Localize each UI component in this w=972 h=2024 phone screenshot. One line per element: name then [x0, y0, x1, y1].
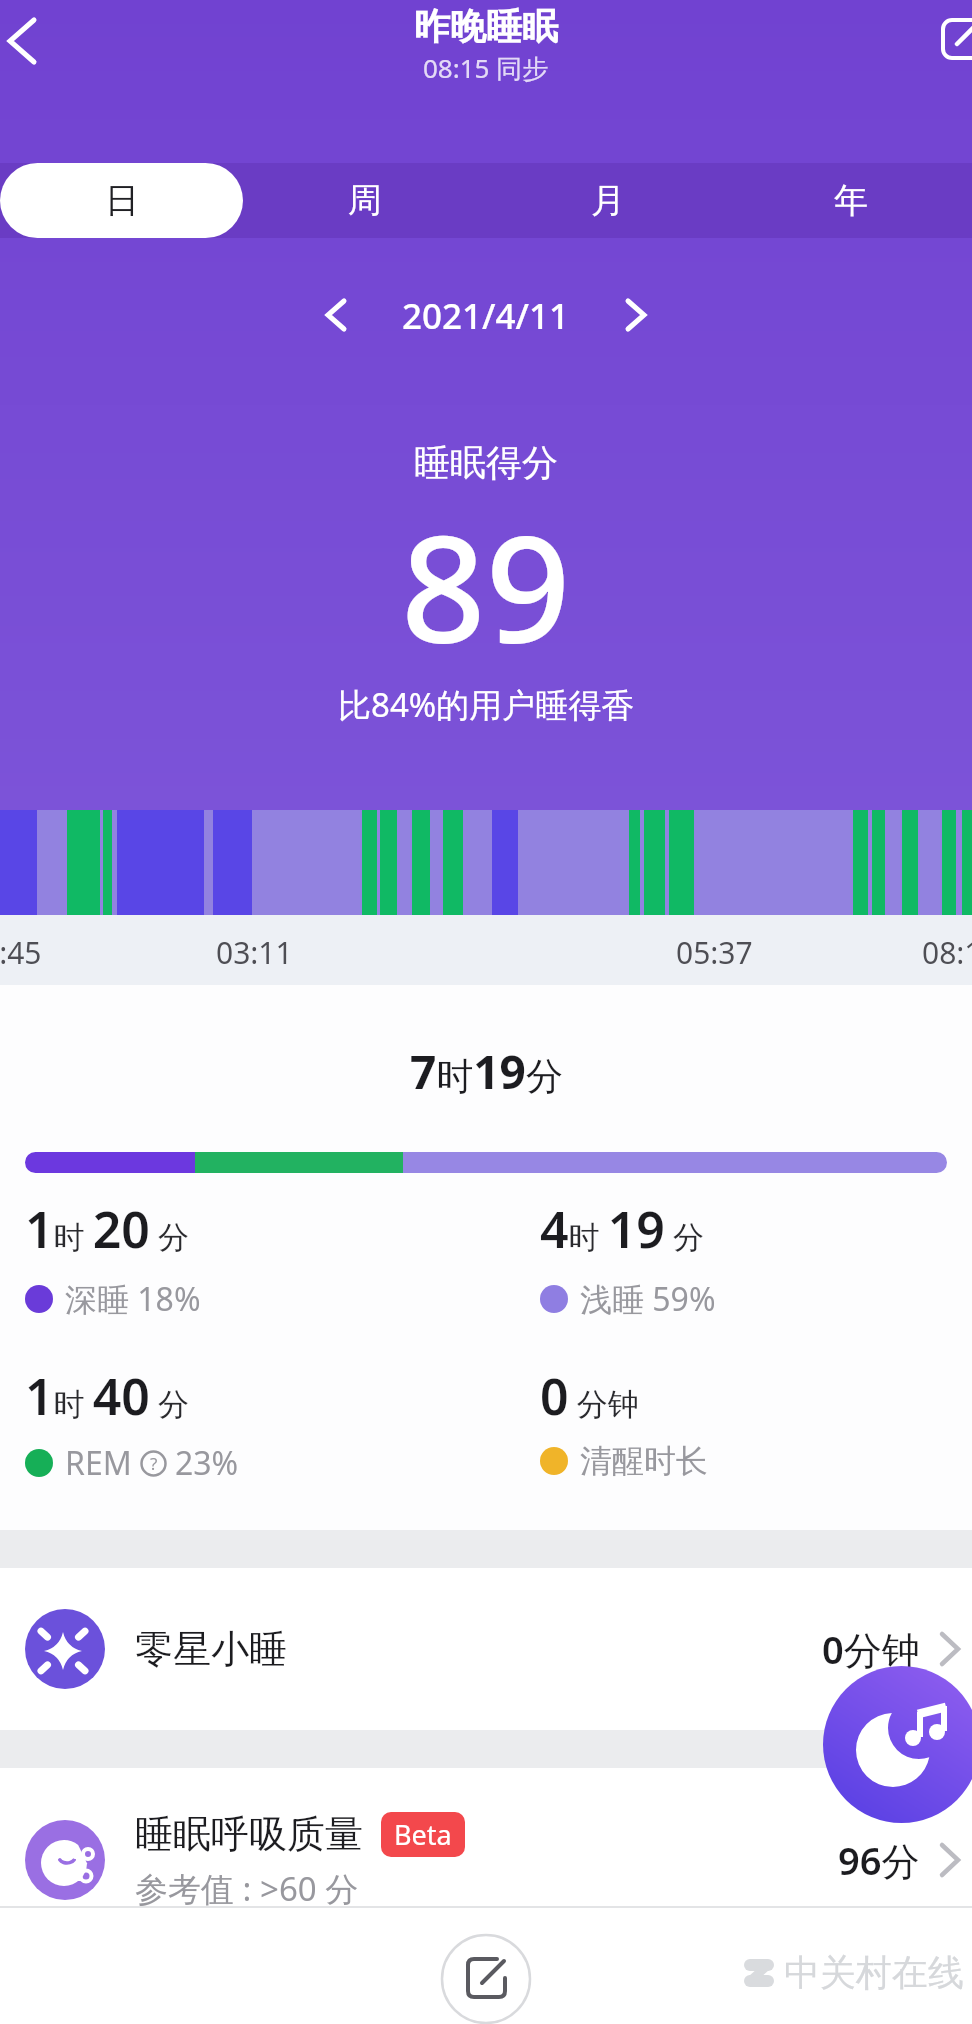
staticText: 比84%的用户睡得香 [338, 682, 635, 727]
staticText: 23% [175, 1441, 239, 1485]
staticText: 1时 40 分 [25, 1362, 189, 1430]
staticText: 参考值 : >60 分 [135, 1866, 359, 1911]
staticText: 中关村在线 [784, 1950, 964, 1995]
staticText: 月 [591, 179, 625, 222]
button[interactable] [823, 1666, 972, 1823]
staticText: 浅睡 59% [580, 1277, 716, 1321]
staticText: 深睡 18% [65, 1277, 201, 1321]
button[interactable]: 周 [243, 163, 486, 238]
button[interactable]: 日 [0, 163, 243, 238]
button[interactable]: 睡眠呼吸质量 [25, 1791, 958, 1929]
staticText: 睡眠呼吸质量 [135, 1810, 363, 1858]
staticText: 4时 19 分 [540, 1195, 704, 1263]
staticText: ? [150, 1452, 158, 1475]
staticText: 03:11 [216, 932, 293, 973]
button[interactable] [10, 20, 34, 62]
staticText: 0 分钟 [540, 1362, 639, 1430]
staticText: 日 [105, 179, 139, 222]
button[interactable] [328, 301, 344, 329]
button[interactable] [941, 14, 972, 62]
staticText: Beta [394, 1816, 452, 1853]
button[interactable]: 月 [486, 163, 729, 238]
staticText: 05:37 [676, 932, 753, 973]
button[interactable] [441, 1934, 531, 2024]
staticText: 睡眠得分 [414, 440, 558, 485]
staticText: REM [65, 1441, 132, 1485]
staticText: 0:45 [0, 932, 42, 973]
staticText: 2021/4/11 [402, 292, 570, 338]
button[interactable] [628, 301, 644, 329]
button[interactable]: 年 [729, 163, 972, 238]
button[interactable]: 零星小睡 [25, 1568, 958, 1730]
staticText: 0分钟 [822, 1623, 920, 1675]
staticText: 零星小睡 [135, 1625, 287, 1673]
staticText: 周 [348, 179, 382, 222]
staticText: 96分 [838, 1834, 920, 1886]
staticText: 1时 20 分 [25, 1195, 189, 1263]
staticText: 年 [834, 179, 868, 222]
staticText: 08:15 [922, 932, 972, 973]
staticText: 08:15 同步 [423, 50, 549, 86]
staticText: 7时19分 [410, 1040, 563, 1103]
staticText: 89 [401, 485, 571, 687]
staticText: 清醒时长 [580, 1441, 708, 1481]
staticText: 昨晚睡眠 [414, 4, 558, 49]
